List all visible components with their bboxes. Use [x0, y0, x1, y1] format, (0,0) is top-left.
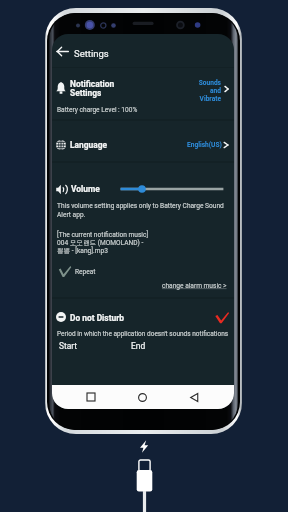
button[interactable]: Back: [56, 46, 69, 57]
staticText: Settings: [74, 48, 109, 59]
staticText: Period in which the application doesn't …: [57, 330, 229, 338]
staticText: Settings: [70, 88, 102, 98]
staticText: Vibrate: [199, 95, 221, 103]
staticText: Battery charge Level : 100%: [57, 106, 138, 114]
staticText: English(US): [187, 141, 222, 149]
staticText: Volume: [71, 184, 100, 194]
button[interactable]: Repeat: [58, 265, 96, 278]
button[interactable]: [52, 68, 234, 119]
button[interactable]: End: [131, 341, 146, 351]
staticText: Language: [70, 140, 108, 150]
staticText: Do not Disturb: [70, 313, 124, 323]
button[interactable]: Start: [59, 341, 78, 351]
button[interactable]: Back: [184, 385, 204, 409]
staticText: and: [210, 87, 221, 95]
button[interactable]: [52, 121, 234, 161]
button[interactable]: Home: [132, 385, 152, 409]
staticText: 004 모모랜드 (MOMOLAND) -: [57, 239, 144, 247]
button[interactable]: [52, 34, 234, 67]
staticText: Notification: [70, 79, 115, 89]
button[interactable]: Recents: [81, 385, 101, 409]
staticText: Repeat: [75, 268, 96, 276]
button[interactable]: change alarm music >: [162, 282, 227, 290]
staticText: 뽕뽕 - [kang].mp3: [57, 247, 108, 255]
staticText: This volume setting applies only to Batt…: [57, 202, 233, 219]
staticText: [The current notification music]: [57, 231, 149, 239]
staticText: Sounds: [198, 79, 221, 87]
